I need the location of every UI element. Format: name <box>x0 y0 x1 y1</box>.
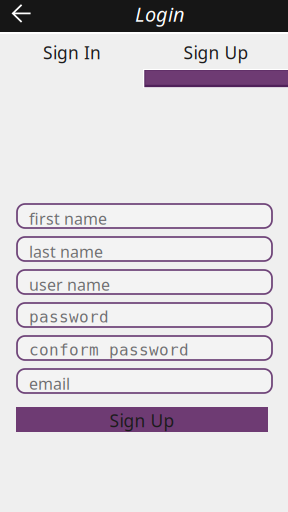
staticText: email <box>29 373 70 394</box>
staticText: Login <box>135 1 185 27</box>
button[interactable]: conform password <box>17 336 272 360</box>
button[interactable]: Sign In <box>0 34 144 69</box>
staticText: Sign Up <box>183 41 248 64</box>
button[interactable]: first name <box>17 204 272 228</box>
button[interactable]: Sign Up <box>16 407 268 432</box>
staticText: Sign Up <box>109 409 174 432</box>
staticText: user name <box>29 274 110 295</box>
button[interactable]: Sign Up <box>144 34 288 69</box>
button[interactable]: Back <box>0 0 42 32</box>
button[interactable]: password <box>17 303 272 327</box>
button[interactable]: user name <box>17 270 272 294</box>
staticText: conform password <box>29 341 189 359</box>
button[interactable]: last name <box>17 237 272 261</box>
staticText: first name <box>29 208 107 229</box>
staticText: last name <box>29 241 103 262</box>
button[interactable]: email <box>17 369 272 393</box>
staticText: Sign In <box>43 41 101 64</box>
staticText: password <box>29 308 109 326</box>
